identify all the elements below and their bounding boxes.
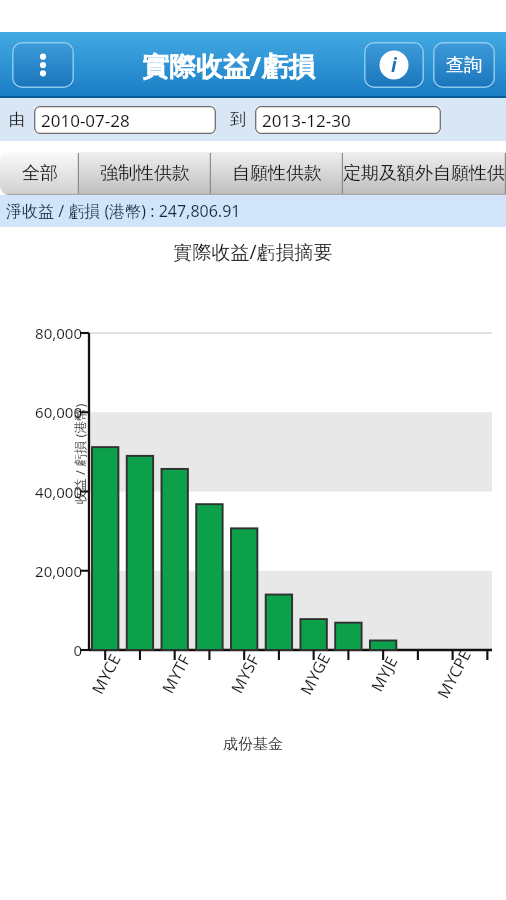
staticText: 強制性供款 <box>100 162 190 185</box>
staticText: i <box>391 52 397 78</box>
staticText: 20,000 <box>35 561 82 581</box>
staticText: 60,000 <box>35 402 82 422</box>
staticText: MYGE <box>285 631 345 717</box>
button[interactable]: 全部 <box>0 152 79 195</box>
staticText: 到 <box>230 110 246 130</box>
staticText: MYSF <box>215 631 275 717</box>
staticText: 2010-07-28 <box>41 109 130 132</box>
staticText: 淨收益 / 虧損 (港幣) : 247,806.91 <box>6 200 241 222</box>
staticText: 80,000 <box>35 323 82 343</box>
staticText: 2013-12-30 <box>262 109 351 132</box>
staticText: MYCE <box>76 631 136 717</box>
button[interactable]: 2013-12-30 <box>255 106 441 134</box>
staticText: 查詢 <box>446 54 482 77</box>
staticText: 自願性供款 <box>232 162 322 185</box>
button[interactable]: Information <box>364 42 424 88</box>
staticText: 定期及額外自願性供款 <box>343 162 506 185</box>
button[interactable]: 查詢 <box>433 42 495 88</box>
button[interactable]: 強制性供款 <box>79 152 211 195</box>
staticText: 收益 / 虧損 (港幣) <box>71 374 89 534</box>
staticText: MYJE <box>354 631 414 717</box>
staticText: 成份基金 <box>0 735 506 754</box>
staticText: 40,000 <box>35 482 82 502</box>
button[interactable]: More options <box>12 42 74 88</box>
staticText: MYCPE <box>424 631 484 717</box>
staticText: MYTF <box>146 631 206 717</box>
button[interactable]: 定期及額外自願性供款 <box>343 152 506 195</box>
staticText: 全部 <box>22 162 58 185</box>
staticText: 由 <box>9 110 25 130</box>
button[interactable]: 2010-07-28 <box>34 106 216 134</box>
button[interactable]: 自願性供款 <box>211 152 343 195</box>
staticText: 0 <box>73 640 82 660</box>
staticText: 實際收益/虧損 <box>142 47 316 84</box>
staticText: 實際收益/虧損摘要 <box>0 239 506 265</box>
